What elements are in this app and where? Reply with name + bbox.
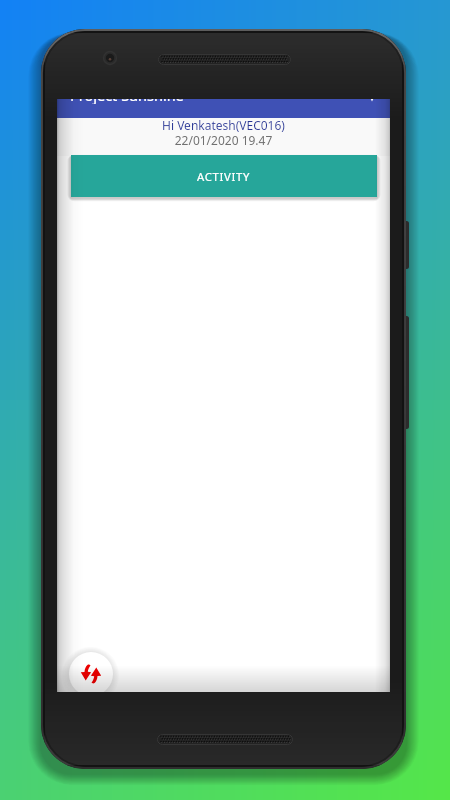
button[interactable]: ACTIVITY [71,155,377,197]
staticText: Project Sunshine [70,99,184,104]
staticText: Hi Venkatesh(VEC016) [57,117,390,133]
button[interactable]: Sync [69,652,113,692]
staticText: 22/01/2020 19.47 [57,132,390,148]
button[interactable]: Project Sunshine [57,99,390,118]
staticText: ACTIVITY [197,169,251,184]
